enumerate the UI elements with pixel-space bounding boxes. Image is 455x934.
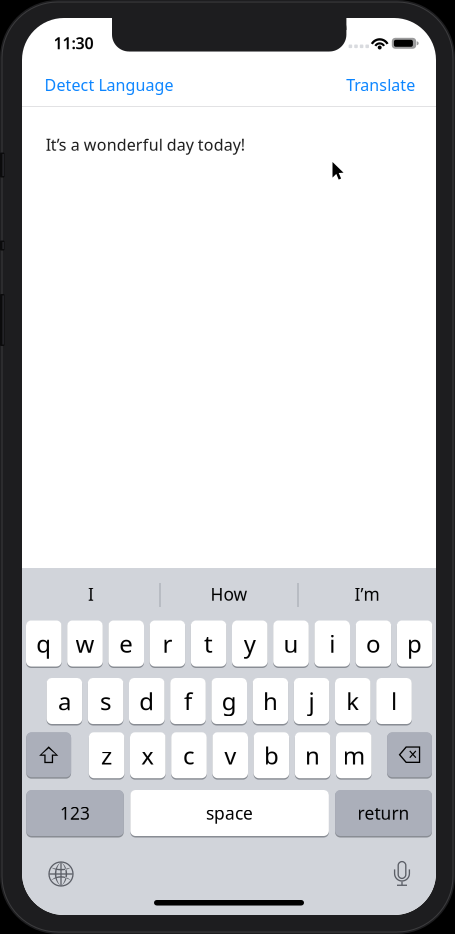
staticText: space [206, 801, 253, 824]
staticText: l [391, 685, 397, 717]
button[interactable]: s [88, 678, 123, 724]
button[interactable]: o [356, 620, 391, 666]
staticText: It’s a wonderful day today! [46, 134, 245, 155]
staticText: e [119, 628, 133, 659]
button[interactable]: l [376, 678, 412, 724]
staticText: s [100, 685, 111, 717]
staticText: How [210, 582, 247, 605]
button[interactable]: j [294, 678, 329, 724]
button[interactable]: Delete [387, 732, 432, 777]
button[interactable]: z [89, 732, 124, 778]
button[interactable]: d [129, 678, 165, 724]
button[interactable]: e [108, 620, 144, 666]
button[interactable]: i [314, 620, 350, 666]
staticText: b [264, 739, 279, 771]
button[interactable]: v [212, 732, 248, 778]
staticText: c [183, 739, 195, 771]
button[interactable]: h [253, 678, 288, 724]
button[interactable]: Detect Language [36, 63, 181, 106]
button[interactable]: x [130, 732, 166, 778]
button[interactable]: space [130, 790, 329, 836]
button[interactable]: Shift [26, 732, 71, 777]
staticText: 123 [60, 801, 90, 824]
staticText: i [329, 628, 335, 659]
staticText: m [343, 739, 365, 771]
button[interactable]: a [47, 678, 82, 724]
staticText: t [204, 628, 213, 659]
staticText: x [141, 739, 154, 771]
staticText: I’m [354, 582, 379, 605]
button[interactable]: w [67, 620, 103, 666]
button[interactable]: r [150, 620, 185, 666]
staticText: d [139, 685, 154, 717]
button[interactable]: g [211, 678, 247, 724]
button[interactable]: b [254, 732, 289, 778]
button[interactable]: q [26, 620, 62, 666]
staticText: j [309, 685, 315, 717]
button[interactable]: y [232, 620, 268, 666]
staticText: o [366, 628, 381, 659]
button[interactable]: Translate [338, 63, 423, 106]
button[interactable]: I’m [298, 568, 436, 620]
button[interactable]: 123 [26, 790, 124, 836]
staticText: h [263, 685, 278, 717]
staticText: r [162, 628, 172, 659]
button[interactable]: u [273, 620, 309, 666]
staticText: I [88, 582, 94, 605]
button[interactable]: I [22, 568, 160, 620]
staticText: f [184, 685, 192, 717]
staticText: Translate [346, 74, 415, 95]
button[interactable]: c [171, 732, 207, 778]
button[interactable]: n [295, 732, 330, 778]
button[interactable]: m [336, 732, 372, 778]
button[interactable]: How [160, 568, 298, 620]
staticText: w [75, 628, 94, 659]
staticText: y [244, 628, 256, 659]
staticText: 11:30 [53, 32, 93, 54]
staticText: k [346, 685, 359, 717]
button[interactable]: f [170, 678, 206, 724]
button[interactable]: k [335, 678, 371, 724]
staticText: g [222, 685, 237, 717]
staticText: q [36, 628, 51, 659]
button[interactable]: return [335, 790, 432, 836]
staticText: v [224, 739, 236, 771]
staticText: z [101, 739, 112, 771]
staticText: return [357, 801, 409, 824]
staticText: Detect Language [44, 74, 173, 95]
button[interactable]: t [191, 620, 226, 666]
staticText: p [407, 628, 422, 659]
button[interactable]: Next keyboard [39, 852, 83, 896]
button[interactable]: p [397, 620, 432, 666]
staticText: a [58, 685, 71, 717]
staticText: n [305, 739, 320, 771]
button[interactable]: Dictate [380, 852, 424, 896]
staticText: u [283, 628, 298, 659]
